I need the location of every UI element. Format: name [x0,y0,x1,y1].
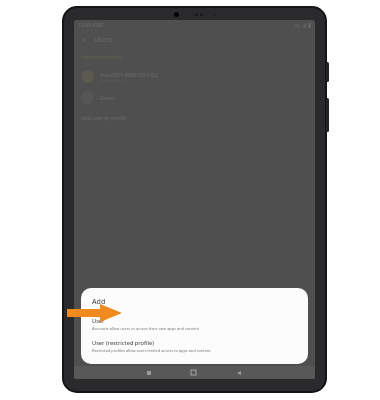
button[interactable]: Back [216,366,261,379]
staticText: Add user or profile [81,114,127,121]
staticText: 12:45 AT&T [78,22,104,29]
staticText: Users and profiles [81,54,123,61]
staticText: Guest [100,94,115,101]
staticText: Add [92,297,106,307]
staticText: 4G [294,23,300,28]
staticText: Restricted profiles allow users limited … [92,348,211,353]
staticText: User (restricted profile) [92,339,154,347]
button[interactable]: Back [80,36,88,44]
staticText: Accounts allow users to access their own… [92,326,200,331]
button[interactable]: Home [171,366,216,379]
button[interactable]: User [92,317,298,331]
staticText: You (OTT-NEW-TO-LIG) [100,71,158,78]
staticText: Users [94,35,113,45]
button[interactable]: User (restricted profile) [92,339,298,353]
button[interactable]: Recents [127,366,171,379]
other: Annotation arrow pointing to User option [67,304,122,322]
staticText: User [92,317,105,325]
